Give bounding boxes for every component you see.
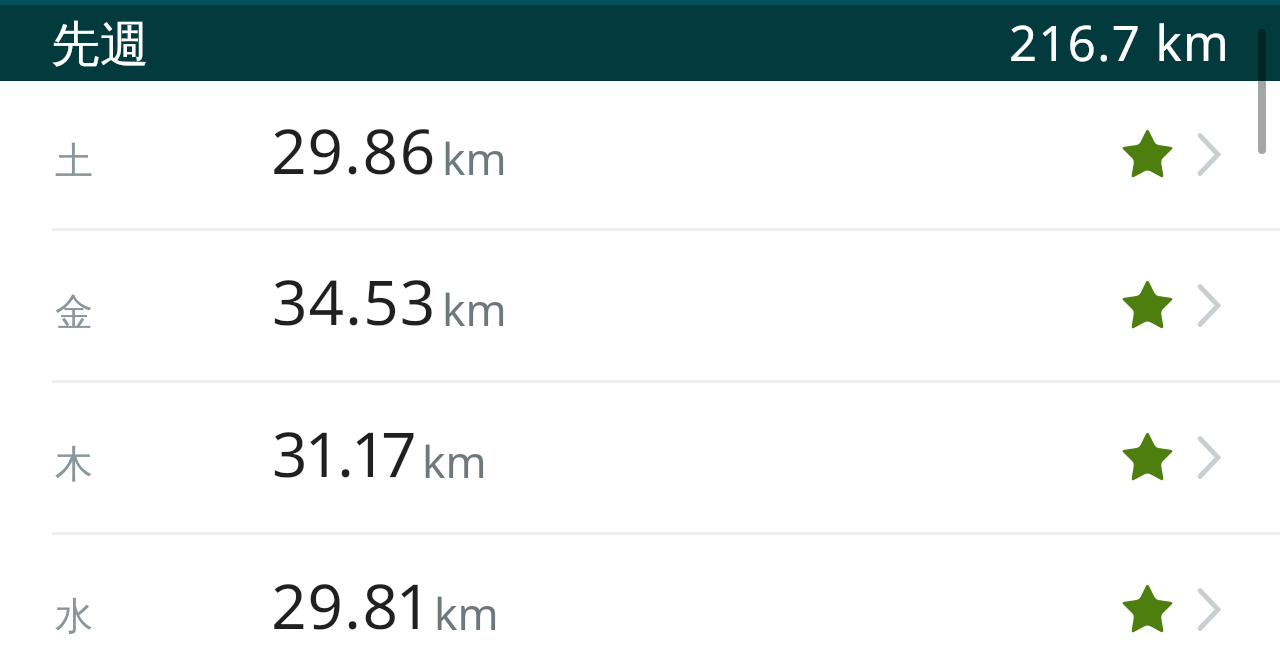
button[interactable]: Favourite xyxy=(1121,431,1174,481)
button[interactable]: 土 xyxy=(0,81,1280,228)
staticText: 29.86 xyxy=(272,108,437,192)
staticText: 金 xyxy=(55,288,93,336)
staticText: 29.81 xyxy=(272,563,429,647)
staticText: km xyxy=(442,279,507,339)
staticText: 31.17 xyxy=(272,411,417,495)
button[interactable]: Favourite xyxy=(1121,279,1174,329)
button[interactable]: 水 xyxy=(0,542,1280,670)
button[interactable]: Favourite xyxy=(1121,128,1174,178)
staticText: km xyxy=(442,128,507,188)
button[interactable]: 金 xyxy=(0,231,1280,380)
button[interactable]: 木 xyxy=(0,383,1280,532)
button[interactable]: Open details xyxy=(1197,133,1221,176)
button[interactable]: Open details xyxy=(1197,284,1221,327)
staticText: 34.53 xyxy=(272,259,437,343)
staticText: km xyxy=(434,583,499,643)
button[interactable]: 先週 xyxy=(0,5,1280,81)
staticText: 土 xyxy=(55,137,93,185)
button[interactable]: Favourite xyxy=(1121,583,1174,633)
staticText: km xyxy=(422,431,487,491)
staticText: 先週 xyxy=(51,14,149,76)
button[interactable]: Open details xyxy=(1197,588,1221,631)
staticText: 木 xyxy=(55,440,93,488)
staticText: 水 xyxy=(55,592,93,640)
button[interactable]: Open details xyxy=(1197,436,1221,479)
staticText: 216.7 km xyxy=(1009,9,1231,76)
